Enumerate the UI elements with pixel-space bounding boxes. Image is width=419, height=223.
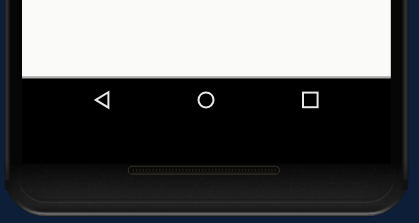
button[interactable]: Recents [279,78,347,123]
button[interactable]: Back [72,78,140,123]
button[interactable]: Home [175,78,243,123]
